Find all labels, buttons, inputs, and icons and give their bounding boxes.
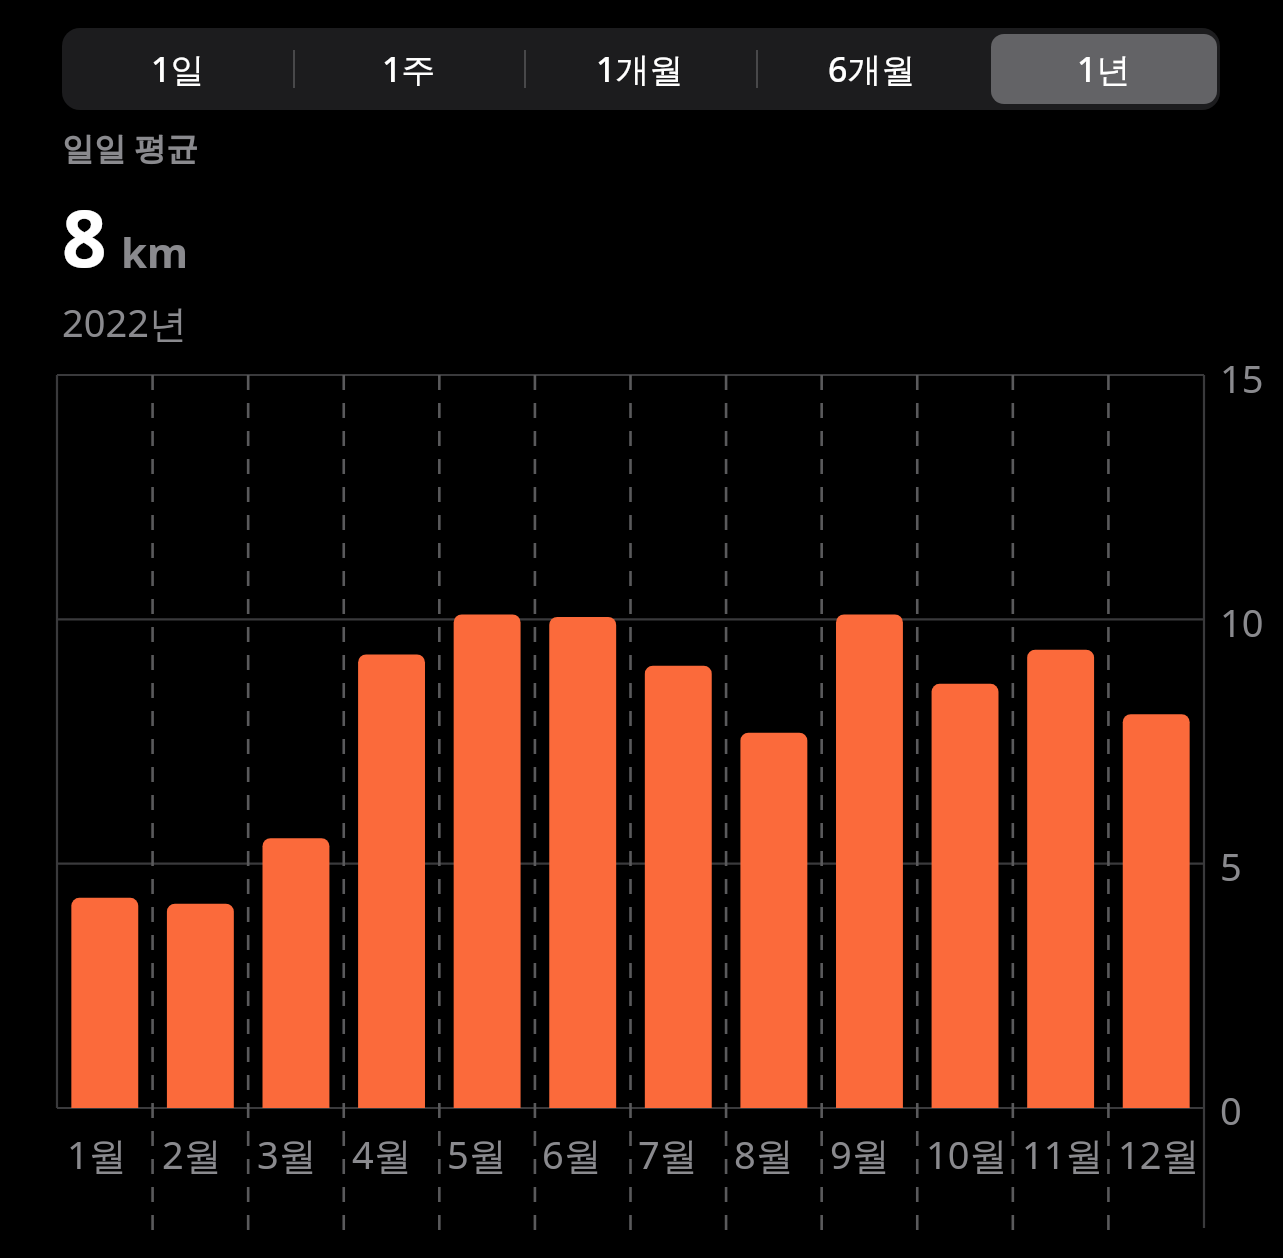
staticText: 9월	[830, 1128, 890, 1180]
staticText: 2월	[162, 1128, 222, 1180]
staticText: 일일 평균	[62, 126, 199, 170]
button[interactable]: 6개월	[756, 28, 988, 110]
staticText: 2022년	[62, 296, 187, 348]
staticText: 10월	[926, 1128, 1008, 1180]
staticText: 0	[1220, 1084, 1242, 1136]
staticText: 1월	[67, 1128, 127, 1180]
staticText: 1개월	[596, 46, 684, 92]
staticText: 3월	[257, 1128, 317, 1180]
staticText: 10	[1220, 596, 1264, 648]
staticText: 11월	[1022, 1128, 1104, 1180]
staticText: 7월	[638, 1128, 698, 1180]
button[interactable]: 1일	[62, 28, 293, 110]
staticText: 1주	[382, 46, 436, 92]
staticText: 1년	[1077, 46, 1131, 92]
staticText: 1일	[151, 46, 205, 92]
button[interactable]: 1개월	[524, 28, 756, 110]
staticText: km	[121, 223, 188, 280]
staticText: 6개월	[828, 46, 916, 92]
staticText: 5월	[447, 1128, 507, 1180]
staticText: 8	[62, 184, 107, 290]
staticText: 15	[1220, 352, 1264, 404]
staticText: 8월	[734, 1128, 794, 1180]
staticText: 6월	[542, 1128, 602, 1180]
button[interactable]: 1년	[988, 28, 1220, 110]
staticText: 4월	[352, 1128, 412, 1180]
staticText: 5	[1220, 840, 1242, 892]
button[interactable]: 1주	[293, 28, 524, 110]
staticText: 12월	[1118, 1128, 1200, 1180]
